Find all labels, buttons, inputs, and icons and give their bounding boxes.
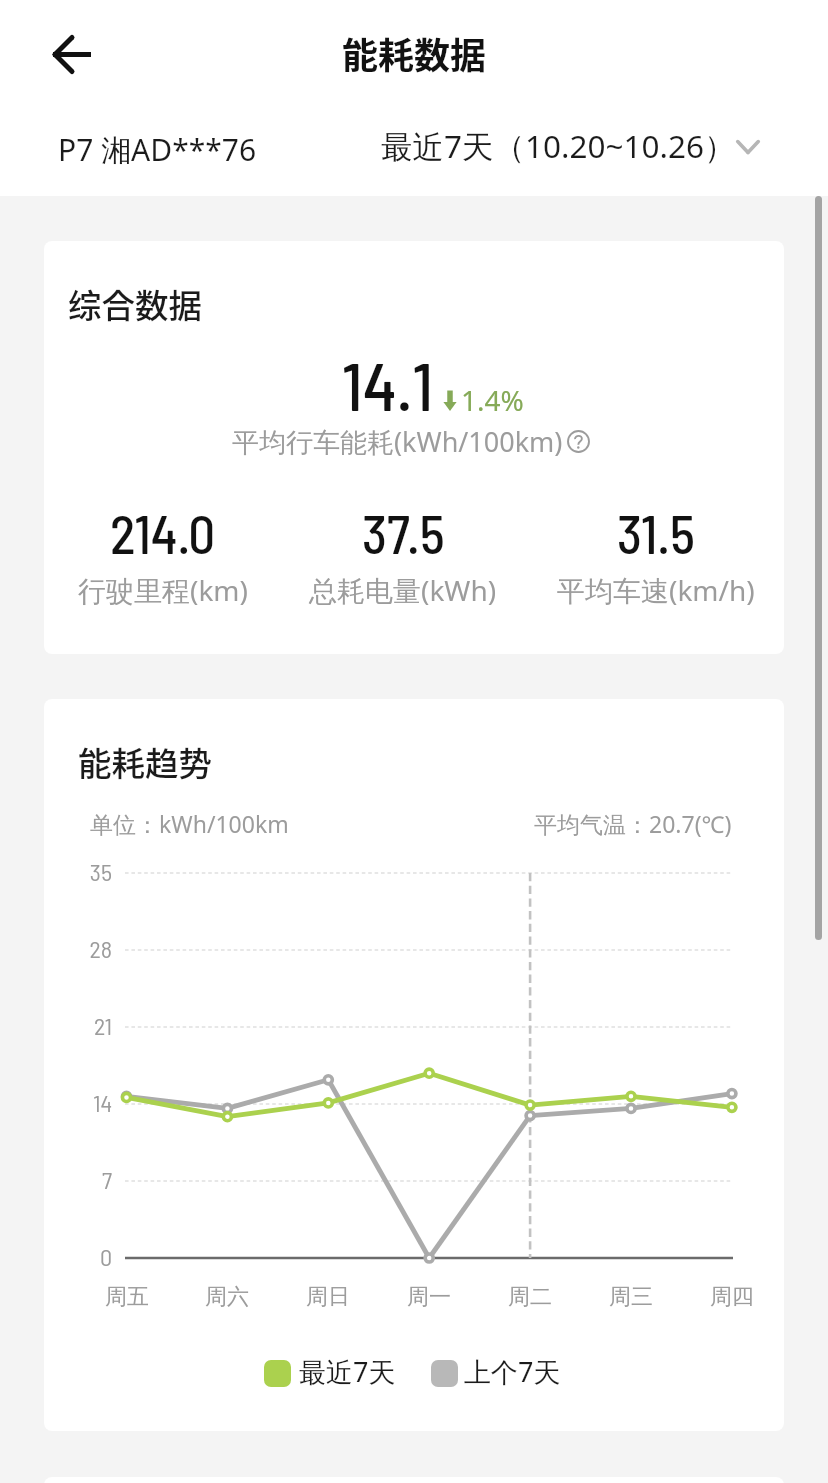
staticText: 周一 xyxy=(369,1283,489,1311)
staticText: 0 xyxy=(40,1242,112,1271)
staticText: 214.0 xyxy=(110,501,216,565)
button[interactable]: 最近7天（10.20~10.26） xyxy=(370,118,770,176)
staticText: 周四 xyxy=(672,1283,792,1311)
staticText: 周二 xyxy=(470,1283,590,1311)
staticText: 上个7天 xyxy=(464,1353,561,1390)
staticText: 平均气温：20.7(℃) xyxy=(534,808,732,839)
staticText: 最近7天（10.20~10.26） xyxy=(381,124,736,167)
staticText: 行驶里程(km) xyxy=(78,571,248,609)
button[interactable]: Back xyxy=(32,25,92,85)
staticText: 平均行车能耗(kWh/100km) xyxy=(232,423,563,460)
staticText: P7 湘AD***76 xyxy=(58,129,257,170)
staticText: 28 xyxy=(40,934,112,963)
staticText: 14.1 xyxy=(342,344,434,424)
staticText: 周日 xyxy=(268,1283,388,1311)
staticText: 周五 xyxy=(67,1283,187,1311)
staticText: 21 xyxy=(40,1011,112,1040)
staticText: 37.5 xyxy=(362,501,445,565)
staticText: 周六 xyxy=(167,1283,287,1311)
staticText: 7 xyxy=(40,1165,112,1194)
staticText: 14 xyxy=(40,1088,112,1117)
staticText: 能耗数据 xyxy=(0,27,828,79)
staticText: 综合数据 xyxy=(68,279,202,328)
staticText: 周三 xyxy=(571,1283,691,1311)
staticText: 1.4% xyxy=(461,381,524,419)
staticText: 能耗趋势 xyxy=(78,737,212,786)
staticText: 单位：kWh/100km xyxy=(90,808,289,839)
staticText: 最近7天 xyxy=(299,1353,396,1390)
staticText: 31.5 xyxy=(617,501,695,565)
staticText: 平均车速(km/h) xyxy=(557,571,755,609)
staticText: 35 xyxy=(40,857,112,886)
staticText: 总耗电量(kWh) xyxy=(309,571,497,609)
